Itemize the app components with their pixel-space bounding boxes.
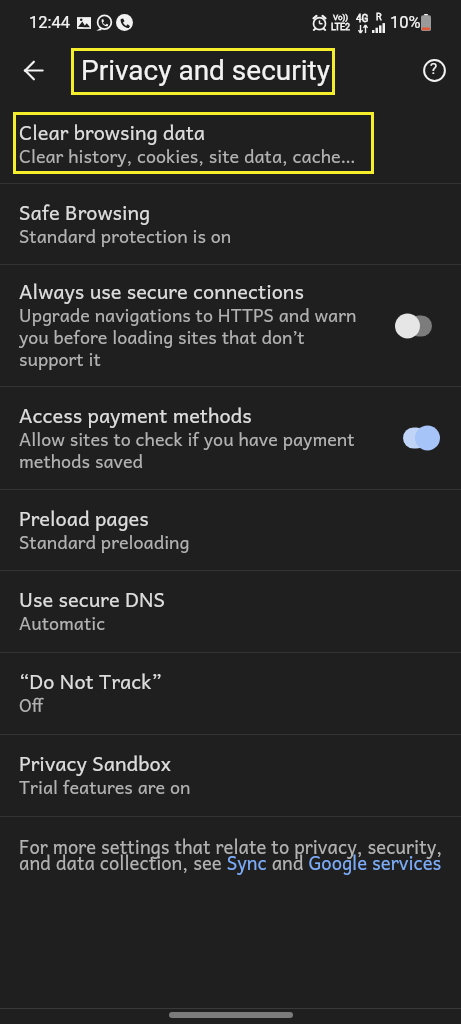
staticText: Off xyxy=(19,690,44,719)
staticText: Safe Browsing xyxy=(19,196,151,228)
staticText: 10% xyxy=(390,13,421,32)
staticText: Use secure DNS xyxy=(19,583,166,615)
staticText: Access payment methods xyxy=(19,399,252,431)
button[interactable]: Safe Browsing xyxy=(0,184,461,265)
button[interactable]: Off xyxy=(387,300,439,352)
staticText: 4G xyxy=(356,13,369,25)
button[interactable]: Help xyxy=(415,51,453,89)
staticText: 12:44 xyxy=(29,13,71,32)
button[interactable]: Back xyxy=(14,51,52,89)
staticText: “Do Not Track” xyxy=(19,665,162,697)
staticText: Automatic xyxy=(19,608,106,637)
staticText: Privacy and security xyxy=(81,54,330,87)
staticText: Trial features are on xyxy=(19,772,191,801)
button[interactable]: On xyxy=(395,412,447,464)
staticText: Privacy Sandbox xyxy=(19,747,172,779)
button[interactable]: Privacy Sandbox xyxy=(0,735,461,817)
button[interactable]: “Do Not Track” xyxy=(0,653,461,735)
staticText: Always use secure connections xyxy=(19,275,304,307)
staticText: Allow sites to check if you have payment… xyxy=(19,424,355,475)
staticText: ? xyxy=(430,60,438,78)
button[interactable]: Always use secure connections xyxy=(0,265,461,387)
staticText: R xyxy=(376,12,382,23)
staticText: Standard protection is on xyxy=(19,221,232,250)
staticText: LTE2 xyxy=(331,22,351,33)
staticText: Preload pages xyxy=(19,502,149,534)
button[interactable]: Use secure DNS xyxy=(0,571,461,653)
staticText: Vo)) xyxy=(333,13,349,22)
staticText: Clear history, cookies, site data, cache… xyxy=(19,141,356,170)
staticText: and data collection, see Sync and Google… xyxy=(19,847,442,877)
button[interactable]: Access payment methods xyxy=(0,387,461,490)
staticText: For more settings that relate to privacy… xyxy=(19,831,443,861)
staticText: Clear browsing data xyxy=(19,116,206,148)
button[interactable]: Preload pages xyxy=(0,490,461,571)
staticText: Upgrade navigations to HTTPS and warn yo… xyxy=(19,300,357,373)
button[interactable]: Clear browsing data xyxy=(0,105,461,184)
staticText: Standard preloading xyxy=(19,527,190,556)
